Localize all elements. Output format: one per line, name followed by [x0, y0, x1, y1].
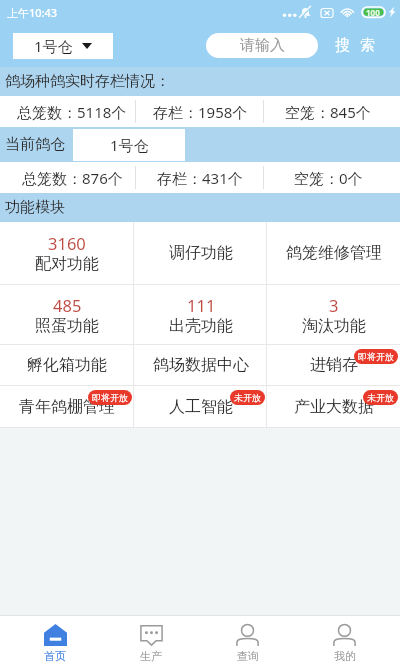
staticText: 我的	[334, 649, 356, 663]
button[interactable]: 查询	[199, 616, 296, 666]
staticText: 485	[53, 294, 82, 316]
button[interactable]: 人工智能	[134, 386, 267, 427]
staticText: 出壳功能	[169, 316, 233, 336]
staticText: 调仔功能	[169, 243, 233, 263]
staticText: 索	[360, 36, 375, 55]
staticText: 3160	[48, 232, 86, 254]
staticText: 孵化箱功能	[27, 355, 107, 375]
staticText: 进销存	[310, 355, 358, 375]
staticText: 3	[329, 294, 339, 316]
button[interactable]: 3	[267, 285, 400, 344]
button[interactable]: 请输入	[206, 33, 318, 58]
button[interactable]: 生产	[103, 616, 199, 666]
button[interactable]: 孵化箱功能	[0, 345, 134, 385]
staticText: 首页	[44, 649, 66, 663]
staticText: 总笼数：876个	[22, 168, 123, 188]
staticText: 存栏：1958个	[153, 102, 248, 122]
staticText: 功能模块	[5, 198, 65, 217]
button[interactable]: 鸽场数据中心	[134, 345, 267, 385]
button[interactable]: 1号仓	[73, 129, 185, 161]
staticText: 人工智能	[169, 397, 233, 417]
staticText: 生产	[140, 649, 162, 663]
staticText: 搜	[335, 36, 350, 55]
staticText: 鸽笼维修管理	[286, 243, 382, 263]
staticText: 即将开放	[358, 351, 394, 362]
staticText: 未开放	[367, 392, 394, 403]
button[interactable]: 1号仓	[13, 33, 113, 59]
staticText: 1号仓	[110, 135, 149, 155]
staticText: 空笼：0个	[294, 168, 363, 188]
button[interactable]: 485	[0, 285, 134, 344]
staticText: 存栏：431个	[157, 168, 243, 188]
staticText: 未开放	[234, 392, 261, 403]
staticText: 照蛋功能	[35, 316, 99, 336]
button[interactable]: 青年鸽棚管理	[0, 386, 134, 427]
staticText: 即将开放	[92, 392, 128, 403]
staticText: 淘汰功能	[302, 316, 366, 336]
staticText: 上午10:43	[7, 5, 58, 20]
button[interactable]: 搜	[330, 30, 380, 61]
button[interactable]: 3160	[0, 222, 134, 284]
button[interactable]: 进销存	[267, 345, 400, 385]
staticText: 鸽场种鸽实时存栏情况：	[5, 72, 170, 91]
staticText: 产业大数据	[294, 397, 374, 417]
staticText: 请输入	[240, 36, 285, 55]
button[interactable]: 调仔功能	[134, 222, 267, 284]
staticText: 查询	[237, 649, 259, 663]
staticText: 当前鸽仓	[5, 135, 65, 154]
staticText: 鸽场数据中心	[153, 355, 249, 375]
staticText: 空笼：845个	[285, 102, 371, 122]
button[interactable]: 111	[134, 285, 267, 344]
button[interactable]: 产业大数据	[267, 386, 400, 427]
button[interactable]: 我的	[296, 616, 393, 666]
staticText: 1号仓	[34, 36, 73, 56]
staticText: 111	[187, 294, 216, 316]
button[interactable]: 鸽笼维修管理	[267, 222, 400, 284]
staticText: 青年鸽棚管理	[19, 397, 115, 417]
staticText: 100	[366, 7, 380, 18]
staticText: 配对功能	[35, 254, 99, 274]
staticText: 总笼数：5118个	[17, 102, 127, 122]
button[interactable]: 首页	[7, 616, 103, 666]
